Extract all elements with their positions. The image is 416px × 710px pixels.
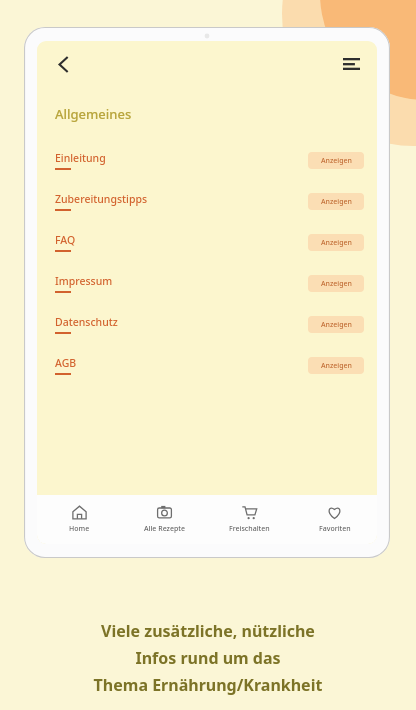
staticText: Anzeigen [321, 279, 352, 289]
button[interactable]: FAQ [37, 231, 377, 254]
button[interactable]: Datenschutz [37, 313, 377, 336]
button[interactable]: Anzeigen [308, 234, 364, 251]
button[interactable]: Anzeigen [308, 152, 364, 169]
staticText: Favoriten [319, 524, 351, 534]
staticText: Freischalten [229, 524, 270, 534]
button[interactable]: Zubereitungstipps [37, 190, 377, 213]
staticText: Thema Ernährung/Krankheit [0, 674, 416, 696]
staticText: Alle Rezepte [144, 524, 185, 534]
staticText: Allgemeines [55, 105, 132, 123]
staticText: Einleitung [55, 151, 106, 165]
button[interactable]: Freischalten [207, 499, 292, 540]
button[interactable]: Back [46, 47, 80, 81]
button[interactable]: Einleitung [37, 149, 377, 172]
button[interactable]: Impressum [37, 272, 377, 295]
staticText: Anzeigen [321, 156, 352, 166]
staticText: Infos rund um das [0, 647, 416, 669]
button[interactable]: Menu [334, 47, 368, 81]
staticText: Datenschutz [55, 315, 118, 329]
staticText: Anzeigen [321, 320, 352, 330]
staticText: Anzeigen [321, 361, 352, 371]
staticText: Anzeigen [321, 238, 352, 248]
staticText: AGB [55, 356, 77, 370]
button[interactable]: Anzeigen [308, 275, 364, 292]
button[interactable]: Alle Rezepte [122, 499, 207, 540]
button[interactable]: AGB [37, 354, 377, 377]
button[interactable]: Anzeigen [308, 193, 364, 210]
button[interactable]: Anzeigen [308, 316, 364, 333]
button[interactable]: Anzeigen [308, 357, 364, 374]
button[interactable]: Favoriten [292, 499, 377, 540]
staticText: Viele zusätzliche, nützliche [0, 620, 416, 642]
staticText: Anzeigen [321, 197, 352, 207]
staticText: Zubereitungstipps [55, 192, 148, 206]
button[interactable]: Home [37, 499, 122, 540]
staticText: Home [69, 524, 90, 534]
staticText: FAQ [55, 233, 76, 247]
staticText: Impressum [55, 274, 113, 288]
